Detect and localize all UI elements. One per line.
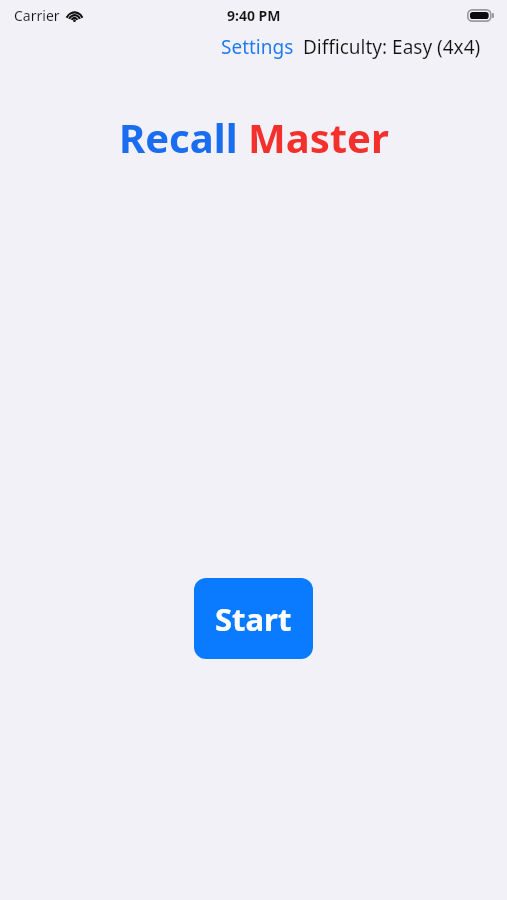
staticText: Start	[215, 598, 292, 640]
other: Battery full	[467, 9, 495, 22]
staticText: Settings	[221, 34, 294, 60]
other: Wi-Fi signal	[66, 9, 83, 22]
staticText: Recall Master	[119, 110, 389, 164]
button[interactable]: Settings	[221, 34, 294, 60]
button[interactable]: Start	[194, 578, 313, 659]
button[interactable]: Difficulty: Easy (4x4)	[303, 34, 481, 60]
staticText: 9:40 PM	[227, 6, 281, 25]
staticText: Carrier	[14, 6, 60, 25]
staticText: Difficulty: Easy (4x4)	[303, 34, 481, 60]
